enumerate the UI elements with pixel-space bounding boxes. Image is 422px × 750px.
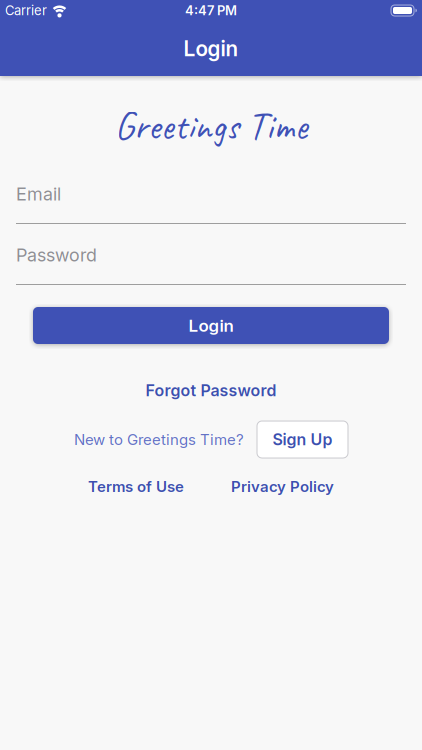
staticText: Email	[16, 183, 61, 205]
button[interactable]: Password	[16, 243, 406, 285]
button[interactable]: Sign Up	[257, 421, 348, 458]
staticText: Carrier	[5, 3, 47, 18]
staticText: 4:47 PM	[185, 3, 237, 18]
staticText: Login	[188, 315, 233, 336]
staticText: Terms of Use	[88, 478, 184, 495]
button[interactable]: Terms of Use	[88, 478, 184, 495]
staticText: Sign Up	[272, 430, 332, 449]
staticText: Privacy Policy	[231, 478, 334, 495]
button[interactable]: Login	[33, 307, 389, 344]
button[interactable]: Forgot Password	[145, 378, 276, 403]
button[interactable]: Privacy Policy	[231, 478, 334, 495]
staticText: Greetings Time	[114, 101, 307, 150]
staticText: Password	[16, 244, 97, 266]
staticText: Forgot Password	[145, 381, 276, 400]
staticText: Login	[183, 36, 238, 61]
staticText: New to Greetings Time?	[74, 431, 244, 448]
button[interactable]: Email	[16, 182, 406, 224]
